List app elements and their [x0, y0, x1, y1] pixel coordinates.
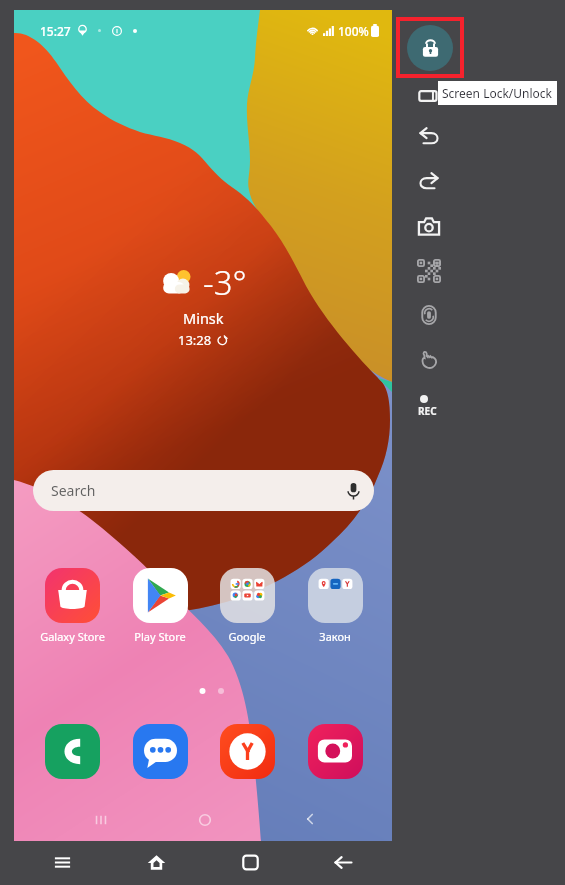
button[interactable] — [205, 724, 289, 779]
button[interactable]: Galaxy Store — [30, 568, 114, 644]
staticText: Screen Lock/Unlock — [442, 85, 553, 101]
staticText: REC — [418, 404, 437, 418]
button[interactable]: Rotate screen — [413, 80, 445, 112]
staticText: Google — [228, 629, 266, 644]
staticText: -3° — [203, 260, 247, 305]
button[interactable]: Home — [141, 847, 171, 877]
staticText: 13:28 — [178, 331, 212, 349]
staticText: Galaxy Store — [40, 629, 105, 644]
button[interactable]: Play Store — [118, 568, 202, 644]
button[interactable]: Record screen — [413, 389, 445, 421]
button[interactable]: Scan QR code — [413, 255, 445, 287]
button[interactable]: Закон — [293, 568, 377, 644]
button[interactable]: Screenshot — [413, 210, 445, 242]
button[interactable]: Recents — [235, 847, 265, 877]
button[interactable] — [118, 724, 202, 779]
button[interactable]: Touch input — [413, 344, 445, 376]
staticText: 100% — [338, 23, 369, 39]
button[interactable]: Screen Lock/Unlock — [396, 17, 464, 78]
button[interactable]: Undo — [413, 120, 445, 152]
button[interactable]: Menu — [47, 847, 77, 877]
staticText: Закон — [319, 629, 351, 644]
button[interactable]: Back — [328, 847, 358, 877]
button[interactable]: Redo — [413, 165, 445, 197]
staticText: Minsk — [183, 308, 224, 328]
button[interactable] — [30, 724, 114, 779]
staticText: 15:27 — [40, 23, 71, 39]
staticText: Play Store — [134, 629, 186, 644]
button[interactable]: -3° — [14, 260, 392, 349]
button[interactable]: Fingerprint — [413, 299, 445, 331]
button[interactable]: Google — [205, 568, 289, 644]
staticText: Search — [51, 481, 96, 500]
button[interactable]: Search — [33, 470, 374, 511]
button[interactable] — [293, 724, 377, 779]
